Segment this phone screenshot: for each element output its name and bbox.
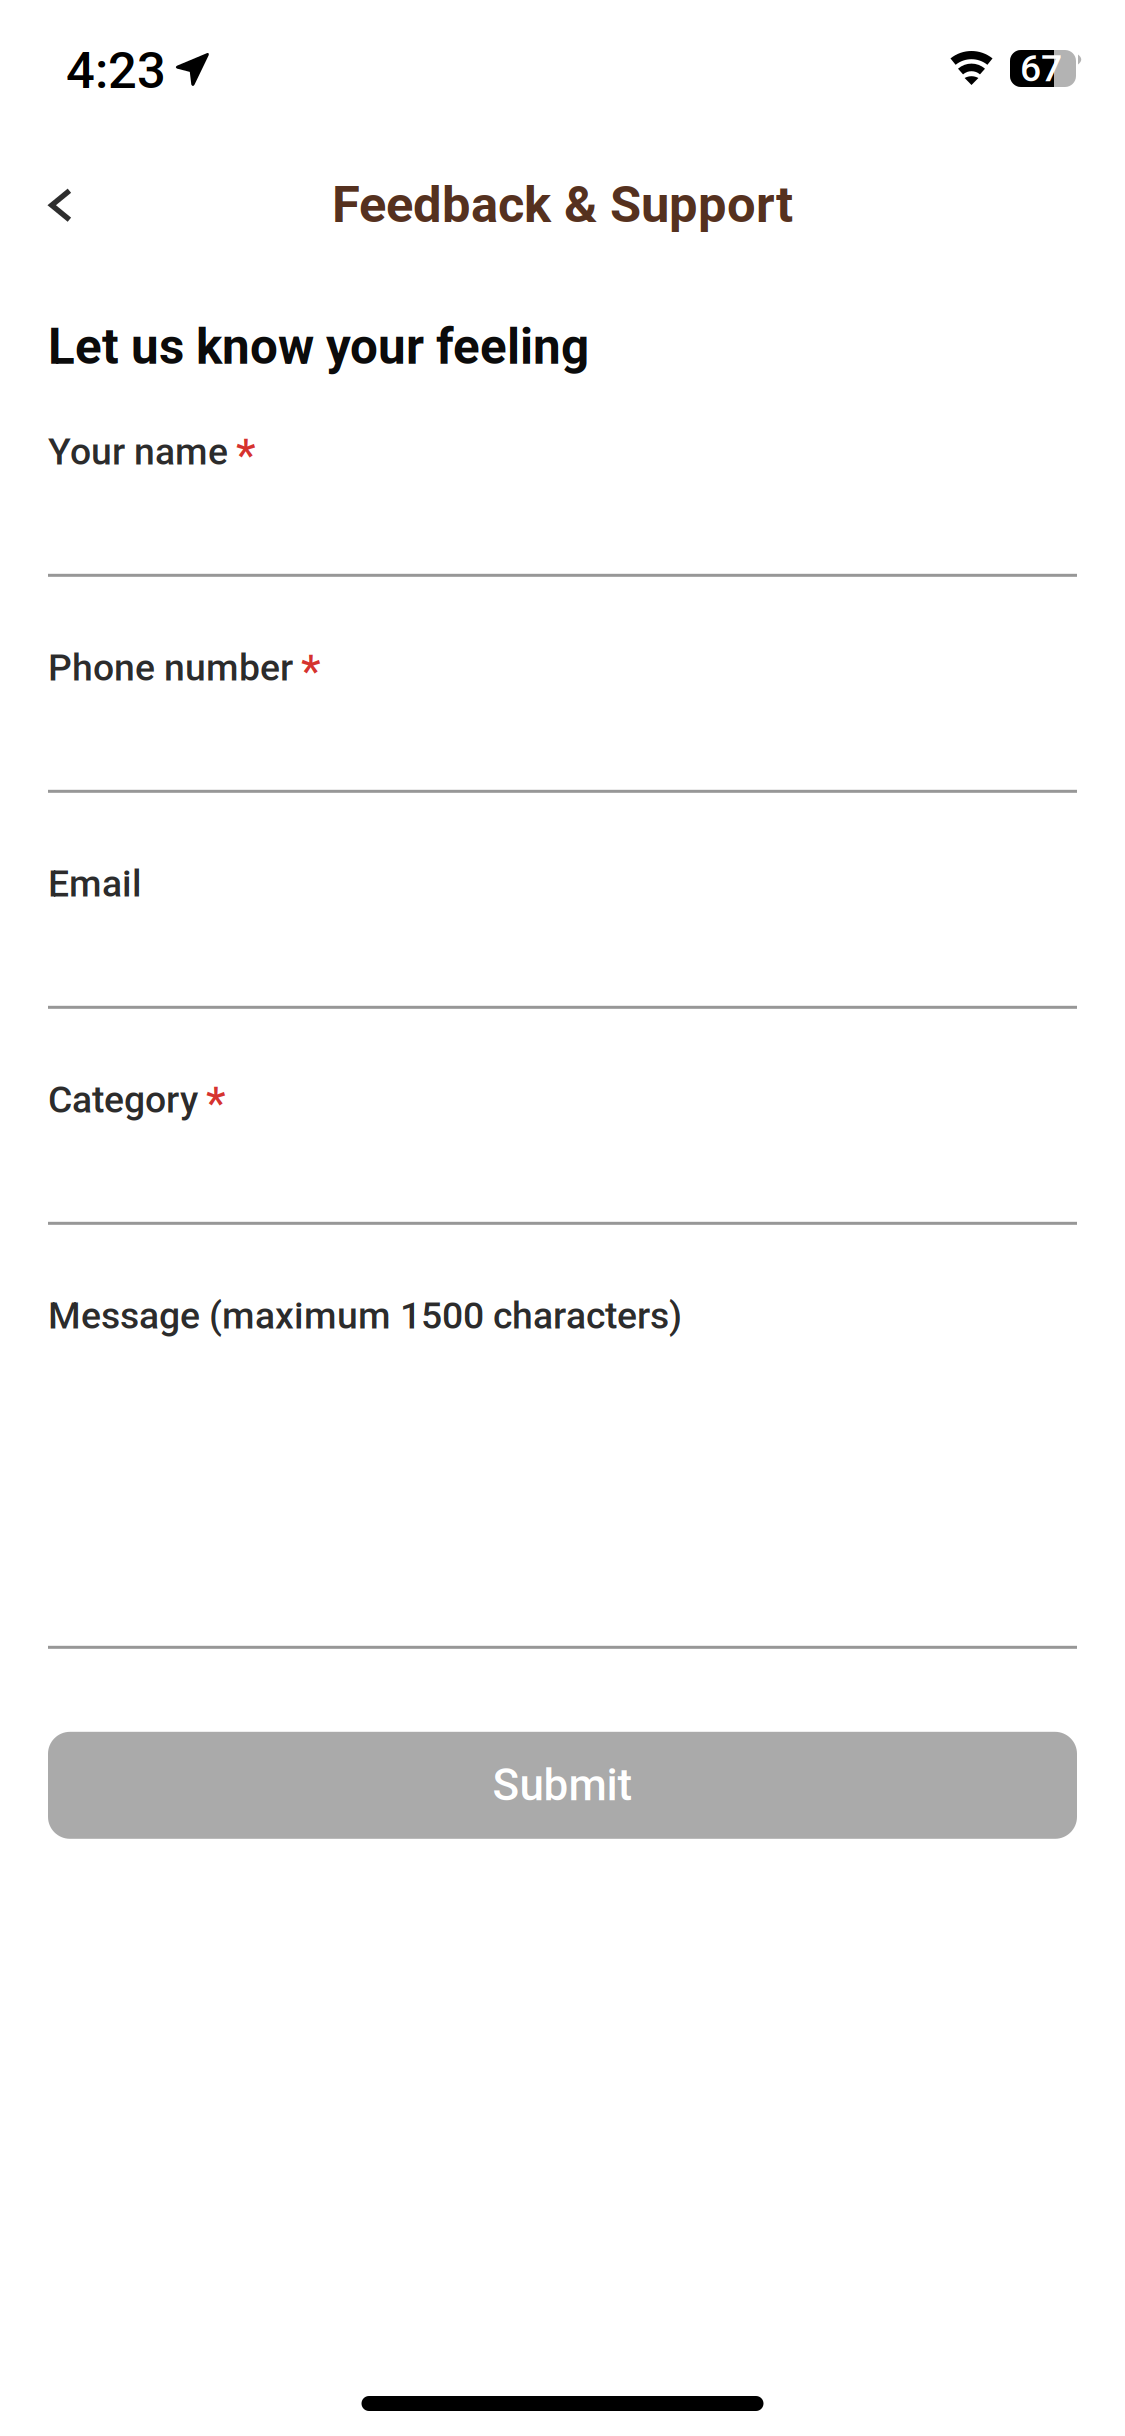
staticText: Let us know your feeling [48, 318, 589, 376]
staticText: Feedback & Support [332, 175, 793, 234]
button[interactable]: Email [48, 862, 1077, 1009]
button[interactable]: Phone number [48, 646, 1077, 793]
staticText: Your name [48, 430, 228, 473]
staticText: Email [48, 862, 142, 905]
button[interactable]: Your name [48, 430, 1077, 577]
staticText: * [236, 430, 256, 481]
button[interactable]: Category [48, 1078, 1077, 1225]
staticText: 67 [1020, 47, 1062, 90]
staticText: * [301, 646, 321, 697]
staticText: Phone number [48, 646, 293, 689]
staticText: Message (maximum 1500 characters) [48, 1294, 682, 1337]
button[interactable]: Back [0, 172, 106, 238]
button[interactable]: Submit [48, 1732, 1077, 1839]
staticText: Category [48, 1078, 198, 1121]
staticText: * [206, 1078, 226, 1129]
button[interactable]: Message (maximum 1500 characters) [48, 1294, 1077, 1649]
staticText: 4:23 [66, 41, 166, 100]
staticText: Submit [492, 1759, 632, 1811]
